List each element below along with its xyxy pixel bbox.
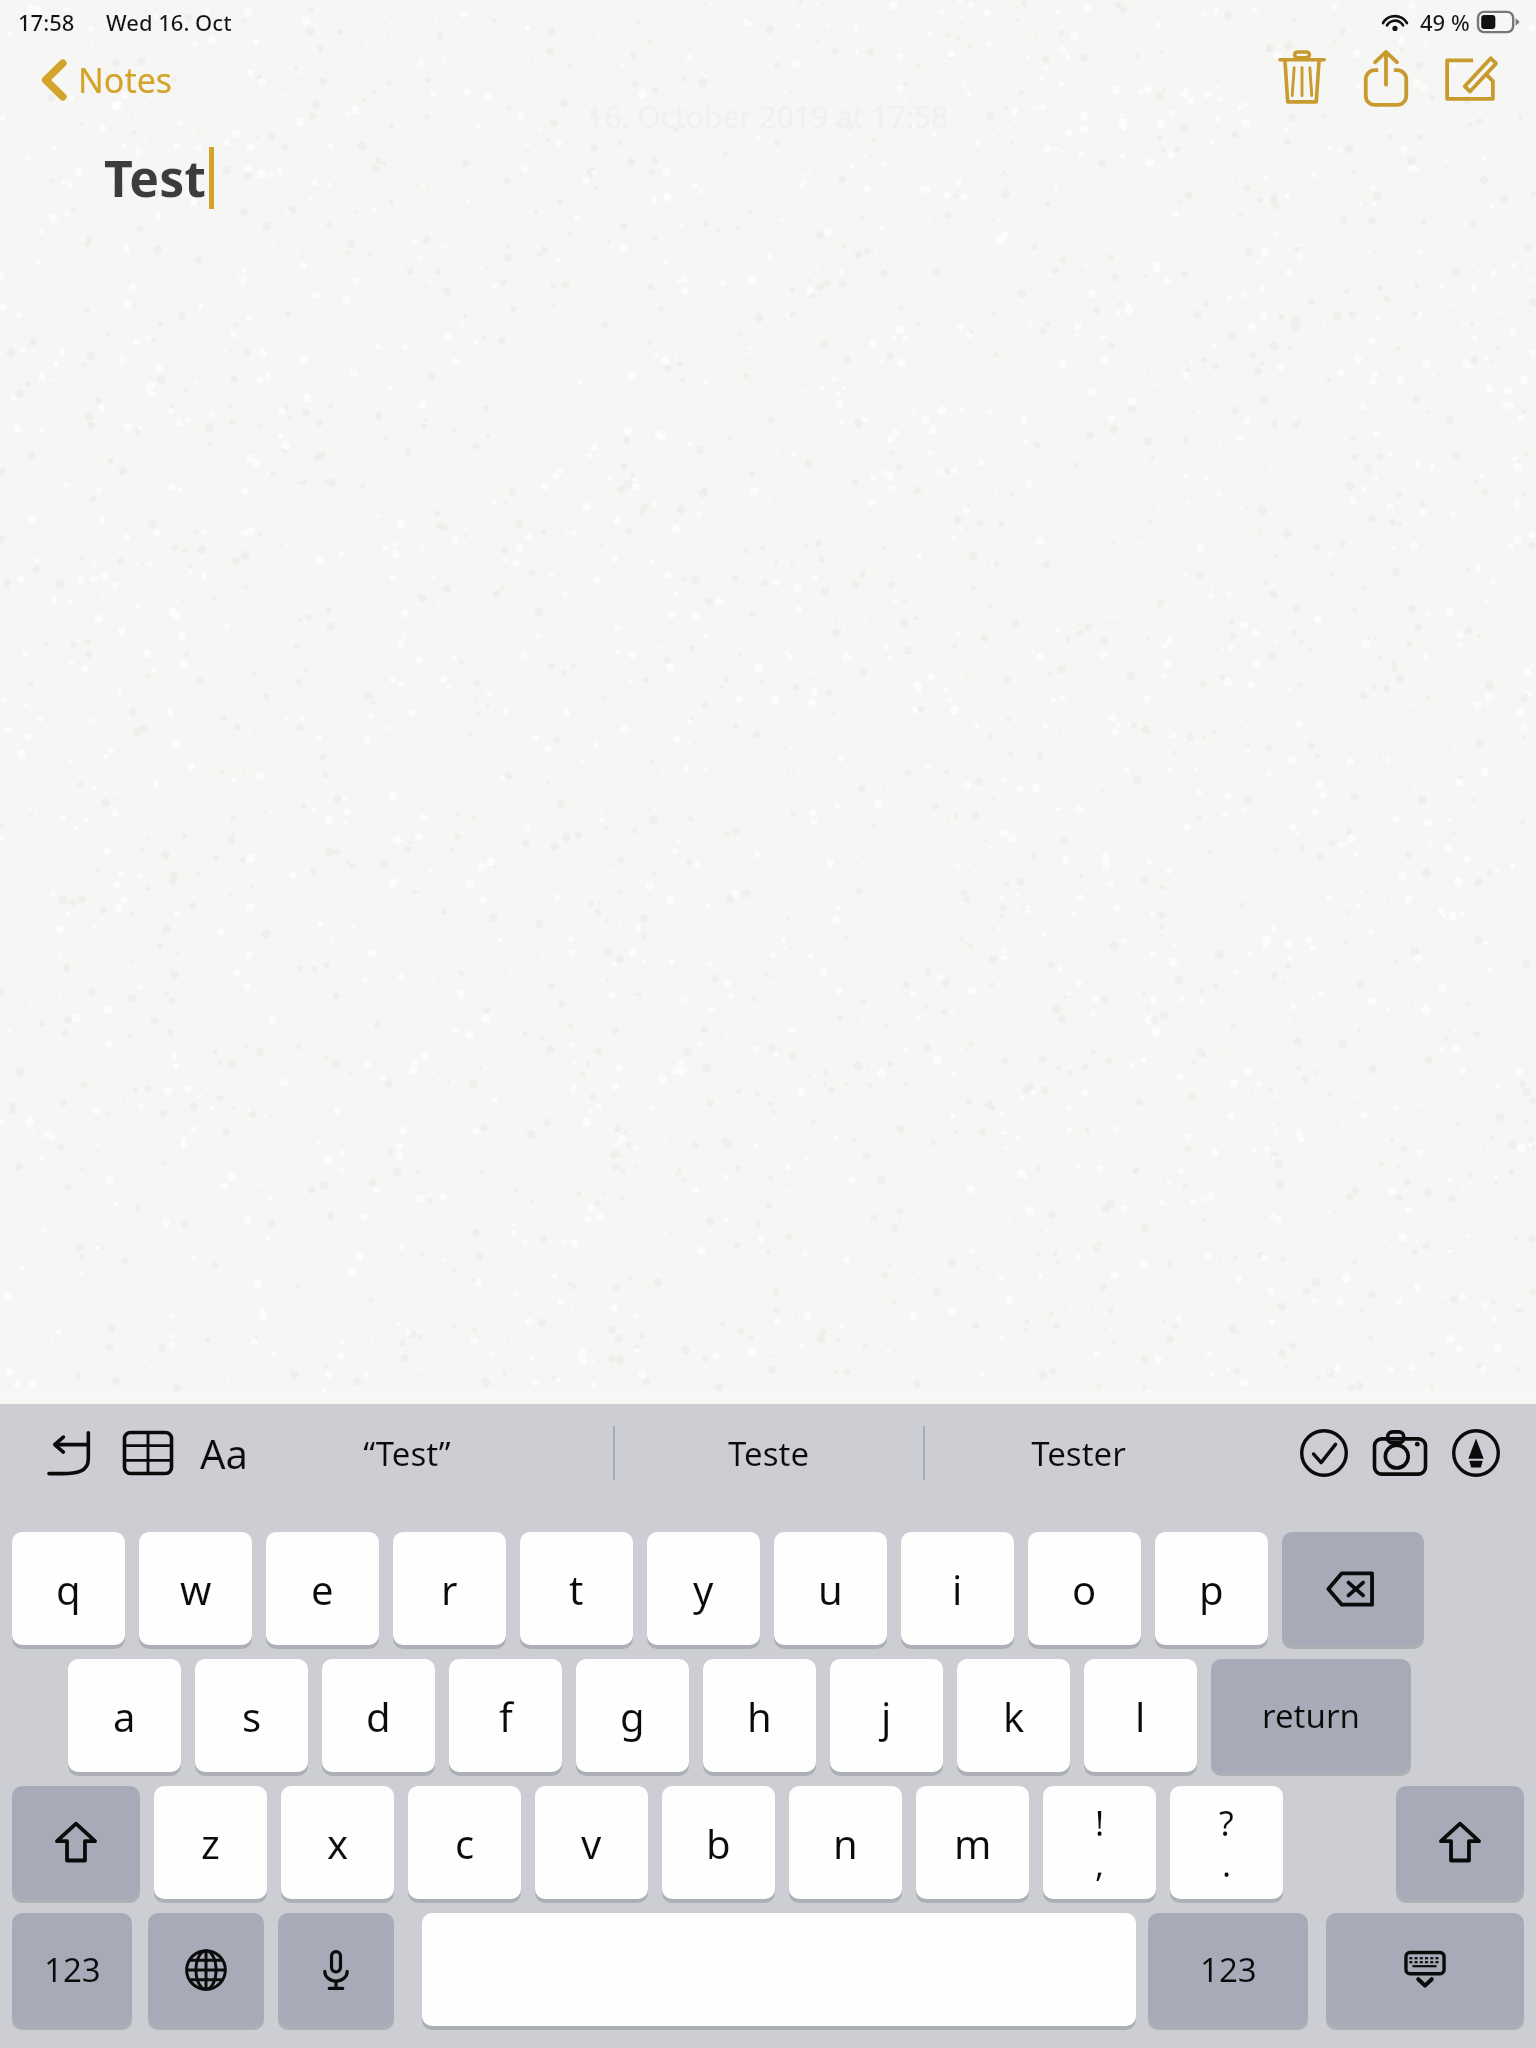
- button[interactable]: 123: [1148, 1913, 1308, 2026]
- button[interactable]: Share: [1344, 36, 1428, 120]
- button[interactable]: New note: [1428, 36, 1512, 120]
- staticText: 17:58: [18, 7, 75, 37]
- staticText: 123: [1200, 1947, 1257, 1992]
- button[interactable]: n: [789, 1786, 902, 1899]
- staticText: Aa: [200, 1426, 248, 1480]
- staticText: u: [818, 1562, 843, 1616]
- button[interactable]: u: [774, 1532, 887, 1645]
- staticText: j: [881, 1689, 892, 1743]
- staticText: a: [113, 1689, 136, 1743]
- button[interactable]: 123: [12, 1913, 132, 2026]
- staticText: Wed 16. Oct: [106, 7, 232, 37]
- staticText: b: [706, 1816, 731, 1870]
- button[interactable]: d: [322, 1659, 435, 1772]
- button[interactable]: return: [1211, 1659, 1411, 1772]
- button[interactable]: Notes: [38, 49, 177, 111]
- button[interactable]: c: [408, 1786, 521, 1899]
- staticText: f: [499, 1689, 513, 1743]
- button[interactable]: e: [266, 1532, 379, 1645]
- staticText: !: [1095, 1800, 1105, 1846]
- button[interactable]: s: [195, 1659, 308, 1772]
- button[interactable]: r: [393, 1532, 506, 1645]
- button[interactable]: !: [1043, 1786, 1156, 1899]
- button[interactable]: k: [957, 1659, 1070, 1772]
- staticText: s: [242, 1689, 262, 1743]
- staticText: z: [201, 1816, 220, 1870]
- button[interactable]: g: [576, 1659, 689, 1772]
- staticText: 123: [44, 1947, 101, 1992]
- button[interactable]: a: [68, 1659, 181, 1772]
- button[interactable]: z: [154, 1786, 267, 1899]
- staticText: t: [569, 1562, 584, 1616]
- staticText: v: [581, 1816, 602, 1870]
- staticText: o: [1072, 1562, 1097, 1616]
- button[interactable]: Camera: [1362, 1415, 1438, 1491]
- staticText: Test: [104, 144, 206, 212]
- button[interactable]: ?: [1170, 1786, 1283, 1899]
- button[interactable]: m: [916, 1786, 1029, 1899]
- staticText: y: [693, 1562, 714, 1616]
- staticText: i: [952, 1562, 963, 1616]
- staticText: q: [56, 1562, 81, 1616]
- button[interactable]: j: [830, 1659, 943, 1772]
- staticText: ?: [1219, 1800, 1234, 1846]
- staticText: n: [833, 1816, 858, 1870]
- button[interactable]: h: [703, 1659, 816, 1772]
- button[interactable]: Hide keyboard: [1326, 1913, 1524, 2026]
- button[interactable]: v: [535, 1786, 648, 1899]
- button[interactable]: t: [520, 1532, 633, 1645]
- button[interactable]: Dictate: [278, 1913, 394, 2026]
- button[interactable]: “Test”: [200, 1404, 613, 1502]
- staticText: e: [311, 1562, 334, 1616]
- button[interactable]: Teste: [613, 1404, 923, 1502]
- staticText: l: [1135, 1689, 1146, 1743]
- button[interactable]: Shift: [1396, 1786, 1524, 1899]
- staticText: g: [620, 1689, 645, 1743]
- staticText: return: [1262, 1693, 1360, 1738]
- button[interactable]: Insert table: [110, 1415, 186, 1491]
- staticText: w: [180, 1562, 212, 1616]
- button[interactable]: Backspace: [1282, 1532, 1424, 1645]
- staticText: k: [1003, 1689, 1025, 1743]
- button[interactable]: Text format: [186, 1415, 262, 1491]
- staticText: p: [1199, 1562, 1224, 1616]
- button[interactable]: Undo: [34, 1415, 110, 1491]
- button[interactable]: Delete note: [1260, 36, 1344, 120]
- staticText: 49 %: [1420, 7, 1470, 37]
- button[interactable]: y: [647, 1532, 760, 1645]
- staticText: Notes: [78, 57, 173, 103]
- button[interactable]: l: [1084, 1659, 1197, 1772]
- staticText: m: [954, 1816, 992, 1870]
- staticText: h: [747, 1689, 772, 1743]
- button[interactable]: p: [1155, 1532, 1268, 1645]
- button[interactable]: Change keyboard: [148, 1913, 264, 2026]
- staticText: c: [455, 1816, 475, 1870]
- button[interactable]: Tester: [923, 1404, 1233, 1502]
- button[interactable]: f: [449, 1659, 562, 1772]
- button[interactable]: b: [662, 1786, 775, 1899]
- button[interactable]: Shift: [12, 1786, 140, 1899]
- button[interactable]: o: [1028, 1532, 1141, 1645]
- button[interactable]: w: [139, 1532, 252, 1645]
- button[interactable]: x: [281, 1786, 394, 1899]
- staticText: .: [1222, 1841, 1232, 1887]
- staticText: x: [327, 1816, 349, 1870]
- staticText: Teste: [728, 1431, 809, 1476]
- staticText: r: [441, 1562, 458, 1616]
- staticText: d: [366, 1689, 391, 1743]
- button[interactable]: i: [901, 1532, 1014, 1645]
- button[interactable]: Checklist: [1286, 1415, 1362, 1491]
- button[interactable]: Markup: [1438, 1415, 1514, 1491]
- staticText: Tester: [1031, 1431, 1126, 1476]
- staticText: ,: [1095, 1841, 1105, 1887]
- button[interactable]: q: [12, 1532, 125, 1645]
- staticText: “Test”: [363, 1431, 451, 1476]
